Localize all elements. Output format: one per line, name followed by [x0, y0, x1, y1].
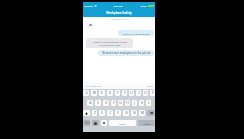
button[interactable]: Z	[92, 110, 97, 116]
button[interactable]: V	[115, 110, 121, 116]
button[interactable]: K	[139, 100, 144, 106]
button[interactable]: Y	[122, 90, 127, 96]
staticText: T	[117, 91, 119, 95]
staticText: Say something...	[85, 85, 103, 88]
staticText: E	[101, 91, 103, 95]
button[interactable]: N	[131, 110, 137, 116]
button[interactable]: return	[138, 120, 155, 126]
button[interactable]: space	[109, 120, 136, 126]
staticText: return	[143, 122, 151, 125]
staticText: Z	[94, 111, 96, 115]
button[interactable]: A	[87, 100, 93, 106]
staticText: A	[89, 101, 92, 105]
button[interactable]: F	[111, 100, 116, 106]
button[interactable]: U	[129, 90, 134, 96]
staticText: U	[130, 91, 133, 95]
staticText: M	[141, 111, 144, 115]
staticText: I	[138, 91, 140, 95]
staticText: O	[144, 91, 147, 95]
staticText: L	[148, 101, 150, 105]
staticText: Today at 4:44 AM	[111, 18, 130, 21]
staticText: C	[109, 111, 112, 115]
button[interactable]: Send	[147, 85, 153, 88]
staticText: P	[152, 91, 154, 95]
button[interactable]: E	[99, 90, 105, 96]
button[interactable]: Emoji	[92, 120, 99, 126]
staticText: F	[113, 101, 115, 105]
button[interactable]: There is a jackhammer in the constructio…	[86, 38, 133, 48]
staticText: X	[101, 111, 103, 115]
staticText: H	[126, 101, 129, 105]
staticText: Q	[85, 91, 88, 95]
staticText: space	[119, 122, 126, 125]
button[interactable]: X	[99, 110, 105, 116]
staticText: B	[125, 111, 128, 115]
staticText: Workplace Safety	[106, 11, 132, 15]
button[interactable]: Dictate	[101, 120, 107, 126]
button[interactable]: P	[150, 90, 155, 96]
staticText: Show me non-employees on the job site	[102, 51, 151, 55]
button[interactable]: L	[146, 100, 151, 106]
button[interactable]: Backspace	[147, 110, 155, 116]
button[interactable]: M	[139, 110, 145, 116]
staticText: W	[93, 91, 96, 95]
button[interactable]: T	[115, 90, 120, 96]
button[interactable]: S	[95, 100, 101, 106]
button[interactable]: I	[136, 90, 141, 96]
staticText: 123	[84, 121, 90, 125]
staticText: D	[105, 101, 108, 105]
staticText: V	[117, 111, 119, 115]
staticText: N	[133, 111, 136, 115]
button[interactable]: Q	[83, 90, 89, 96]
staticText: Send	[147, 85, 153, 88]
staticText: G	[119, 101, 122, 105]
button[interactable]: G	[118, 100, 123, 106]
staticText: 100%	[140, 4, 147, 7]
staticText: 4:44 AM	[113, 4, 123, 7]
button[interactable]: B	[123, 110, 129, 116]
staticText: J	[134, 101, 135, 105]
staticText: No SIM	[84, 4, 93, 7]
staticText: K	[141, 101, 143, 105]
button[interactable]: H	[125, 100, 130, 106]
staticText: Y	[124, 91, 126, 95]
button[interactable]: D	[103, 100, 109, 106]
button[interactable]: Shift	[83, 110, 90, 116]
staticText: Where is a jackhammer	[122, 32, 150, 35]
button[interactable]: Where is a jackhammer	[118, 30, 154, 36]
button[interactable]: O	[143, 90, 148, 96]
staticText: S	[97, 101, 99, 105]
button[interactable]: C	[107, 110, 113, 116]
button[interactable]: 123	[83, 120, 90, 126]
button[interactable]: R	[107, 90, 113, 96]
button[interactable]: J	[132, 100, 137, 106]
staticText: R	[109, 91, 111, 95]
staticText: There is a jackhammer in the constructio…	[93, 40, 127, 46]
button[interactable]: Show me non-employees on the job site	[98, 50, 154, 56]
button[interactable]: W	[91, 90, 97, 96]
